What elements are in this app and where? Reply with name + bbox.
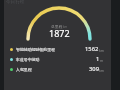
staticText: 今日行程 [6, 0, 25, 5]
staticText: 车道居中辅助 [16, 57, 40, 62]
staticText: m [100, 58, 104, 63]
staticText: 人驾里程 [16, 67, 32, 72]
button[interactable]: 车道居中辅助 [4, 54, 111, 64]
staticText: 智能辅助驾驶领航里程 [16, 47, 55, 52]
staticText: 总里程 [51, 24, 63, 29]
button[interactable]: 人驾里程 [4, 64, 111, 74]
button[interactable]: 智能辅助驾驶领航里程 [4, 44, 111, 54]
staticText: km [99, 48, 104, 53]
staticText: 1 [96, 55, 100, 63]
staticText: 1872 [49, 27, 70, 39]
staticText: km [99, 68, 104, 73]
staticText: 1562 [85, 45, 99, 53]
staticText: km [63, 25, 68, 29]
staticText: 309 [89, 65, 99, 73]
